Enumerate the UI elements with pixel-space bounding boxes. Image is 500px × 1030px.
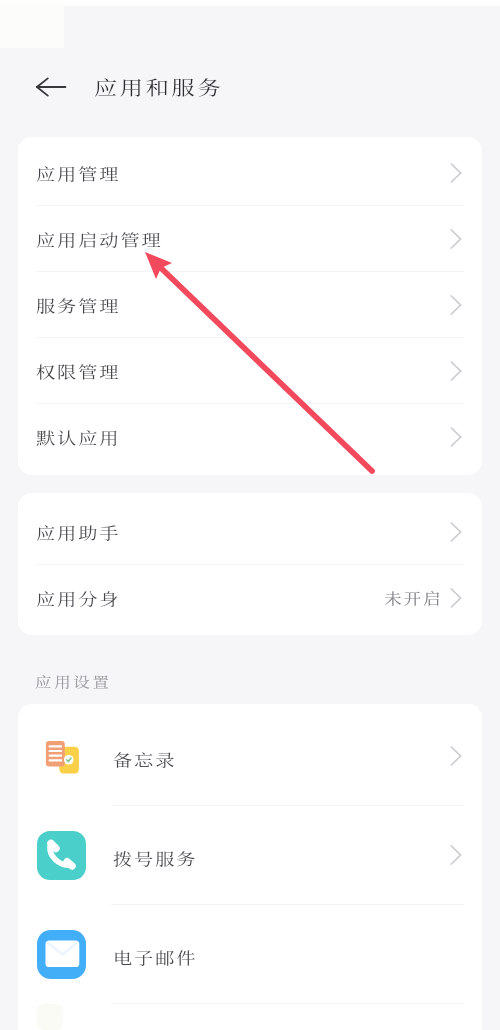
button[interactable]: 备忘录 (18, 707, 482, 806)
staticText: 服务管理 (36, 294, 121, 317)
staticText: 未开启 (384, 587, 443, 608)
button[interactable]: Back (35, 71, 67, 103)
staticText: 应用和服务 (94, 73, 224, 100)
staticText: 应用管理 (36, 162, 121, 185)
staticText: 应用设置 (35, 671, 112, 690)
staticText: 应用启动管理 (36, 228, 163, 251)
button[interactable]: 应用管理 (18, 140, 482, 206)
button[interactable]: 权限管理 (18, 338, 482, 404)
button[interactable]: 应用分身 (18, 565, 482, 630)
button[interactable]: 应用启动管理 (18, 206, 482, 272)
button[interactable]: 拨号服务 (18, 806, 482, 905)
staticText: 应用分身 (36, 587, 121, 610)
button[interactable]: 电子邮件 (18, 905, 482, 1004)
staticText: 权限管理 (36, 360, 121, 383)
staticText: 默认应用 (36, 426, 121, 449)
staticText: 电子邮件 (113, 946, 198, 969)
staticText: 拨号服务 (113, 847, 198, 870)
button[interactable]: 服务管理 (18, 272, 482, 338)
button[interactable]: 默认应用 (18, 404, 482, 469)
button[interactable]: 应用助手 (18, 499, 482, 565)
staticText: 备忘录 (113, 748, 177, 771)
staticText: 应用助手 (36, 521, 121, 544)
